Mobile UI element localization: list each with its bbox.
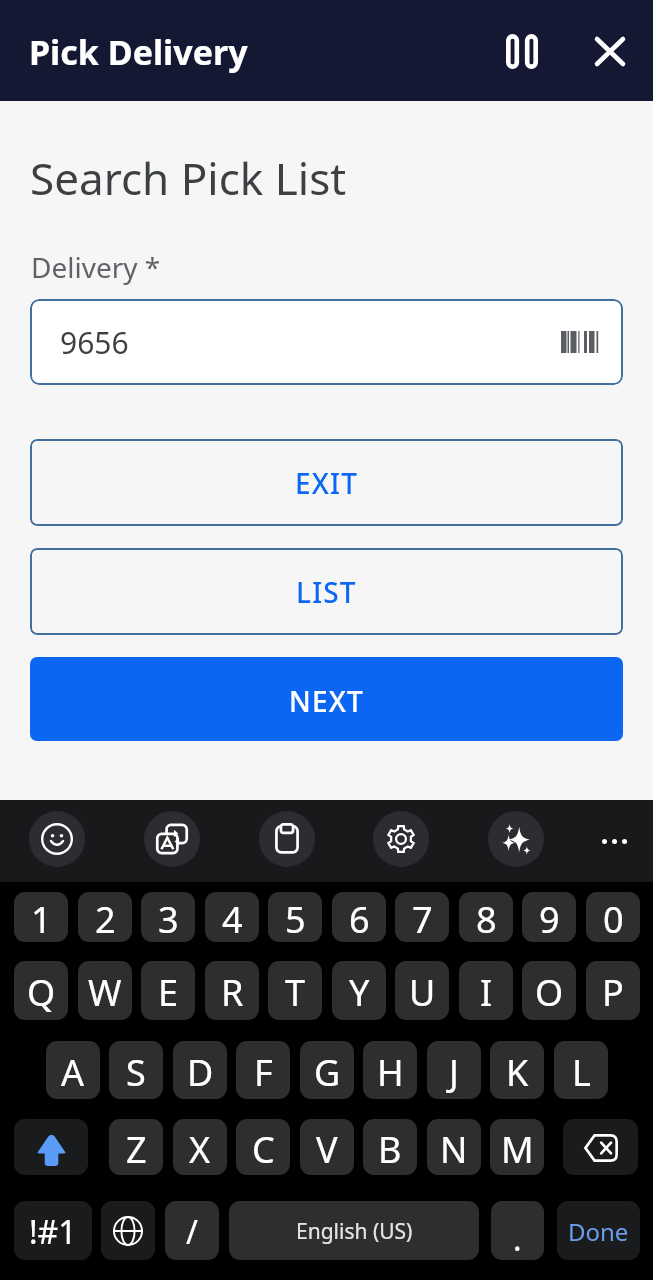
button[interactable]: 1 [14,892,68,942]
button[interactable]: LIST [30,548,623,635]
button[interactable]: C [236,1119,290,1175]
button[interactable]: 5 [268,892,322,942]
staticText: 9656 [60,322,129,363]
staticText: Done [568,1215,629,1248]
button[interactable]: Shift [14,1119,88,1175]
button[interactable]: Y [332,961,386,1020]
button[interactable]: Switch language [101,1201,155,1260]
button[interactable]: I [459,961,513,1020]
button[interactable]: 8 [459,892,513,942]
button[interactable]: Close [576,17,644,85]
button[interactable]: / [165,1201,219,1260]
button[interactable]: !#1 [14,1201,92,1260]
button[interactable]: 2 [78,892,132,942]
button[interactable]: W [78,961,132,1020]
button[interactable]: D [173,1041,227,1099]
button[interactable]: Pause [488,17,556,85]
staticText: 3 [158,895,179,942]
staticText: J [449,1048,459,1097]
button[interactable]: English (US) [229,1201,479,1260]
staticText: 8 [476,895,497,942]
button[interactable]: Translate [144,811,200,867]
staticText: Y [349,968,370,1017]
button[interactable]: X [173,1119,227,1175]
staticText: S [126,1048,146,1097]
staticText: Pick Delivery [29,29,248,75]
button[interactable]: M [490,1119,544,1175]
button[interactable]: G [300,1041,354,1099]
button[interactable]: 3 [141,892,195,942]
button[interactable]: T [268,961,322,1020]
staticText: O [535,968,564,1017]
staticText: T [285,968,306,1017]
button[interactable]: Z [109,1119,163,1175]
button[interactable]: 9 [522,892,576,942]
staticText: D [187,1048,214,1097]
staticText: LIST [296,573,357,611]
button[interactable]: K [490,1041,544,1099]
staticText: A [61,1048,85,1097]
button[interactable]: S [109,1041,163,1099]
staticText: / [186,1210,198,1254]
staticText: Delivery * [31,248,161,286]
staticText: I [480,968,493,1017]
button[interactable]: R [205,961,259,1020]
button[interactable]: EXIT [30,439,623,526]
staticText: 0 [603,895,624,942]
button[interactable]: 6 [332,892,386,942]
button[interactable]: H [363,1041,417,1099]
button[interactable]: V [300,1119,354,1175]
staticText: . [513,1217,522,1260]
staticText: 5 [285,895,306,942]
button[interactable]: 7 [395,892,449,942]
button[interactable]: U [395,961,449,1020]
staticText: B [378,1125,402,1174]
staticText: !#1 [29,1210,77,1254]
staticText: English (US) [296,1217,413,1246]
staticText: L [572,1048,591,1097]
button[interactable]: N [427,1119,481,1175]
staticText: K [506,1048,529,1097]
staticText: EXIT [295,464,359,502]
button[interactable]: Settings [373,811,429,867]
staticText: C [252,1125,275,1174]
staticText: 9 [539,895,560,942]
button[interactable]: F [236,1041,290,1099]
button[interactable]: . [491,1201,544,1260]
staticText: 7 [412,895,433,942]
button[interactable]: 0 [586,892,640,942]
staticText: U [409,968,436,1017]
staticText: X [189,1125,211,1174]
staticText: Q [27,968,56,1017]
staticText: NEXT [289,682,364,720]
button[interactable]: Emoji [29,811,85,867]
button[interactable]: Q [14,961,68,1020]
staticText: 6 [349,895,370,942]
button[interactable]: 9656 [30,299,623,385]
staticText: F [254,1048,273,1097]
button[interactable]: More options [586,813,642,869]
button[interactable]: Done [557,1201,640,1260]
button[interactable]: O [522,961,576,1020]
staticText: G [314,1048,341,1097]
staticText: N [440,1125,468,1174]
staticText: H [377,1048,404,1097]
button[interactable]: A [46,1041,100,1099]
button[interactable]: Clipboard [259,811,315,867]
staticText: V [316,1125,338,1174]
button[interactable]: E [141,961,195,1020]
staticText: 2 [95,895,116,942]
button[interactable]: 4 [205,892,259,942]
button[interactable]: NEXT [30,657,623,741]
button[interactable]: P [586,961,640,1020]
staticText: R [221,968,244,1017]
button[interactable]: Backspace [563,1119,638,1175]
button[interactable]: J [427,1041,481,1099]
button[interactable]: L [554,1041,608,1099]
button[interactable]: Assistant [488,811,544,867]
staticText: Search Pick List [30,148,347,208]
staticText: M [501,1125,534,1174]
staticText: P [602,968,624,1017]
staticText: 1 [31,895,52,942]
button[interactable]: B [363,1119,417,1175]
